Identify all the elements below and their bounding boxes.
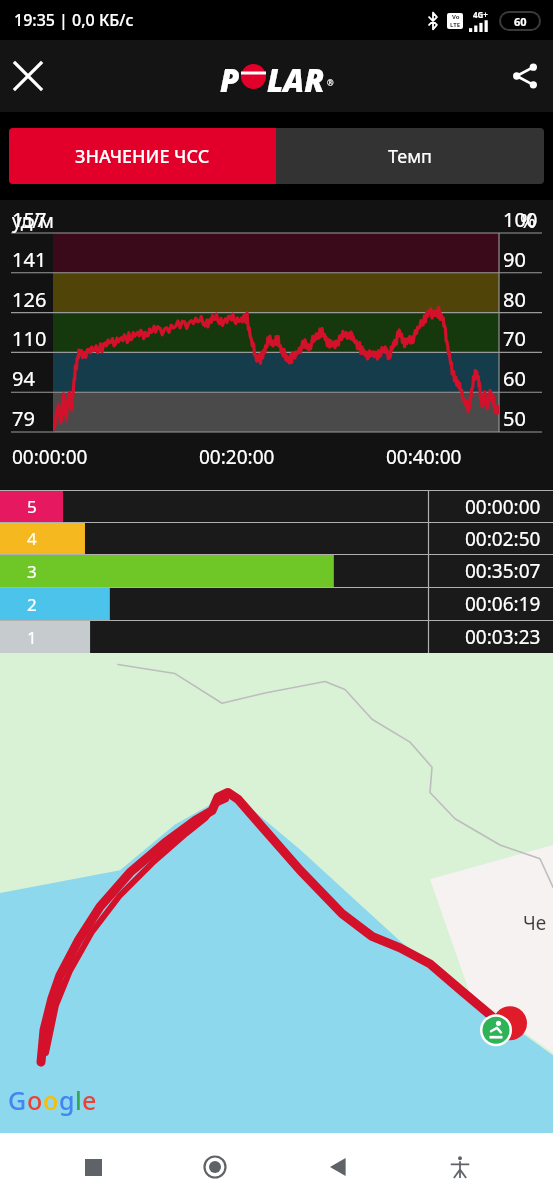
staticText: 50	[503, 405, 526, 432]
staticText: 00:00:00	[12, 444, 88, 470]
button[interactable]: 1	[0, 621, 553, 653]
staticText: 4G+	[473, 9, 488, 20]
staticText: l	[75, 1083, 82, 1117]
staticText: 00:03:23	[465, 624, 541, 650]
staticText: 60	[503, 365, 526, 392]
staticText: ЗНАЧЕНИЕ ЧСС	[75, 144, 210, 169]
staticText: o	[43, 1083, 59, 1117]
button[interactable]: ЗНАЧЕНИЕ ЧСС	[9, 128, 276, 184]
button[interactable]: 5	[0, 491, 553, 522]
staticText: 141	[12, 246, 47, 273]
staticText: Темп	[388, 144, 432, 169]
staticText: 00:02:50	[465, 526, 541, 552]
staticText: 70	[503, 325, 526, 352]
staticText: 110	[12, 325, 47, 352]
staticText: 80	[503, 286, 526, 313]
staticText: e	[82, 1083, 97, 1117]
button[interactable]: 3	[0, 555, 553, 587]
staticText: LTE	[450, 21, 461, 29]
staticText: 00:20:00	[199, 444, 275, 470]
staticText: 1	[27, 626, 37, 649]
button[interactable]: 4	[0, 523, 553, 554]
staticText: 5	[27, 495, 37, 518]
staticText: 79	[12, 405, 35, 432]
staticText: 100	[503, 206, 538, 233]
button[interactable]: Home	[185, 1137, 245, 1197]
staticText: o	[27, 1083, 43, 1117]
staticText: P	[220, 59, 240, 93]
staticText: 19:35 | 0,0 КБ/с	[14, 9, 134, 31]
staticText: 157	[12, 206, 47, 233]
button[interactable]: 2	[0, 588, 553, 620]
button[interactable]: Close	[0, 48, 56, 104]
staticText: Че	[523, 910, 547, 936]
button[interactable]: Recents	[63, 1137, 123, 1197]
staticText: %	[520, 208, 536, 234]
staticText: 00:00:00	[465, 494, 541, 520]
staticText: LAR	[267, 59, 325, 93]
button[interactable]: Темп	[276, 128, 544, 184]
staticText: 4	[27, 527, 37, 550]
button[interactable]: Back	[308, 1137, 368, 1197]
staticText: 90	[503, 246, 526, 273]
staticText: Vo	[452, 13, 460, 21]
staticText: 00:06:19	[465, 591, 541, 617]
staticText: 60	[514, 14, 527, 29]
staticText: g	[59, 1083, 75, 1117]
staticText: 00:35:07	[465, 558, 541, 584]
staticText: 126	[12, 286, 47, 313]
staticText: 2	[27, 593, 37, 616]
staticText: 00:40:00	[386, 444, 462, 470]
staticText: G	[8, 1083, 27, 1117]
staticText: уд/м	[12, 208, 54, 234]
button[interactable]: Accessibility	[430, 1137, 490, 1197]
staticText: 3	[27, 560, 37, 583]
staticText: ®	[327, 77, 334, 88]
staticText: 94	[12, 365, 35, 392]
button[interactable]: Share	[497, 48, 553, 104]
